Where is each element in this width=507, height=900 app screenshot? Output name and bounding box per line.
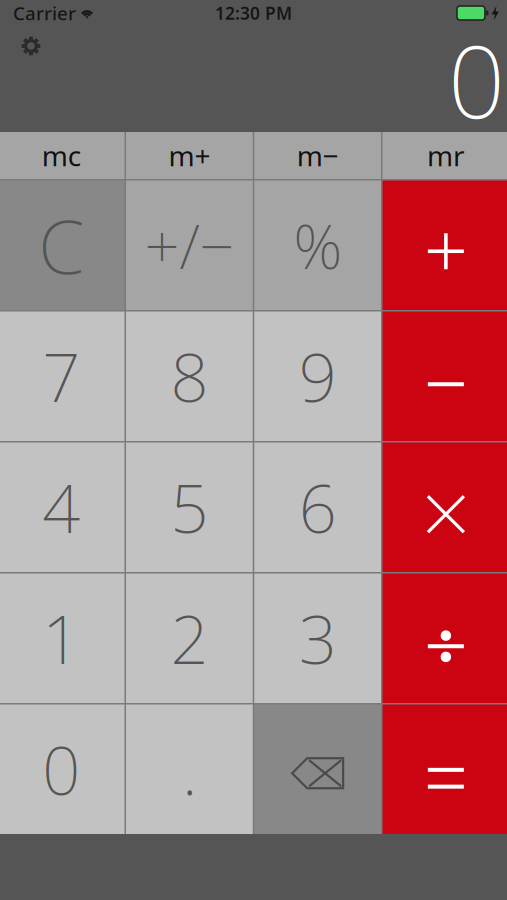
- staticText: m+: [168, 137, 210, 174]
- staticText: 4: [42, 463, 80, 551]
- button[interactable]: Equals: [382, 704, 507, 834]
- button[interactable]: 5: [126, 442, 253, 572]
- button[interactable]: m−: [254, 132, 381, 179]
- staticText: C: [38, 196, 84, 295]
- staticText: %: [293, 204, 342, 286]
- button[interactable]: m+: [126, 132, 253, 179]
- button[interactable]: 6: [254, 442, 381, 572]
- staticText: 9: [299, 332, 337, 420]
- button[interactable]: mr: [382, 132, 507, 179]
- staticText: 2: [170, 594, 208, 682]
- button[interactable]: 4: [0, 442, 125, 572]
- staticText: 0: [448, 13, 505, 146]
- button[interactable]: %: [254, 180, 381, 310]
- button[interactable]: C: [0, 180, 125, 310]
- staticText: 3: [299, 594, 337, 682]
- button[interactable]: Add: [382, 180, 507, 310]
- button[interactable]: .: [126, 704, 253, 834]
- staticText: 5: [170, 463, 208, 551]
- staticText: 0: [42, 725, 80, 813]
- button[interactable]: 3: [254, 573, 381, 703]
- button[interactable]: +/−: [126, 180, 253, 310]
- staticText: 1: [42, 594, 80, 682]
- button[interactable]: 1: [0, 573, 125, 703]
- button[interactable]: 8: [126, 311, 253, 441]
- staticText: +/−: [144, 204, 234, 286]
- button[interactable]: Delete: [254, 704, 381, 834]
- staticText: m−: [297, 137, 339, 174]
- button[interactable]: Subtract: [382, 311, 507, 441]
- staticText: Carrier: [13, 1, 76, 25]
- staticText: 8: [170, 332, 208, 420]
- button[interactable]: 7: [0, 311, 125, 441]
- button[interactable]: 0: [0, 704, 125, 834]
- staticText: 12:30 PM: [215, 1, 292, 24]
- staticText: mr: [427, 137, 465, 174]
- button[interactable]: Divide: [382, 573, 507, 703]
- button[interactable]: 9: [254, 311, 381, 441]
- button[interactable]: Multiply: [382, 442, 507, 572]
- button[interactable]: 2: [126, 573, 253, 703]
- staticText: mc: [42, 137, 81, 174]
- staticText: 6: [299, 463, 337, 551]
- button[interactable]: Settings: [16, 31, 46, 61]
- staticText: 7: [42, 332, 80, 420]
- staticText: .: [182, 725, 197, 813]
- button[interactable]: mc: [0, 132, 125, 179]
